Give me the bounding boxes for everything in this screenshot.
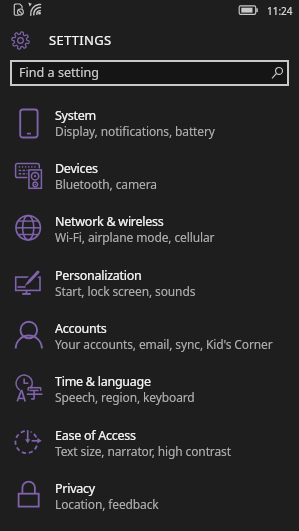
staticText: Privacy	[55, 480, 95, 497]
staticText: Your accounts, email, sync, Kid's Corner	[55, 336, 273, 352]
button[interactable]: Privacy	[0, 474, 299, 527]
button[interactable]: Devices	[0, 154, 299, 207]
staticText: Devices	[55, 160, 98, 177]
staticText: Find a setting	[19, 64, 99, 81]
button[interactable]: Find a setting	[10, 60, 289, 86]
staticText: Start, lock screen, sounds	[55, 283, 196, 299]
staticText: Ease of Access	[55, 427, 136, 444]
staticText: Accounts	[55, 320, 107, 337]
button[interactable]: Network & wireless	[0, 207, 299, 260]
button[interactable]: System	[0, 101, 299, 154]
staticText: Speech, region, keyboard	[55, 389, 195, 405]
staticText: Bluetooth, camera	[55, 176, 157, 192]
button[interactable]: Personalization	[0, 261, 299, 314]
staticText: Personalization	[55, 267, 142, 284]
button[interactable]: Settings	[10, 30, 31, 51]
staticText: System	[55, 107, 96, 124]
staticText: Display, notifications, battery	[55, 123, 215, 139]
staticText: SETTINGS	[49, 31, 112, 49]
button[interactable]: Ease of Access	[0, 421, 299, 474]
staticText: 11:24	[267, 4, 293, 18]
button[interactable]: Time & language	[0, 367, 299, 420]
button[interactable]: Accounts	[0, 314, 299, 367]
staticText: Network & wireless	[55, 213, 164, 230]
staticText: Location, feedback	[55, 496, 159, 512]
staticText: Time & language	[55, 373, 151, 390]
staticText: Text size, narrator, high contrast	[55, 443, 231, 459]
staticText: Wi-Fi, airplane mode, cellular	[55, 229, 215, 245]
